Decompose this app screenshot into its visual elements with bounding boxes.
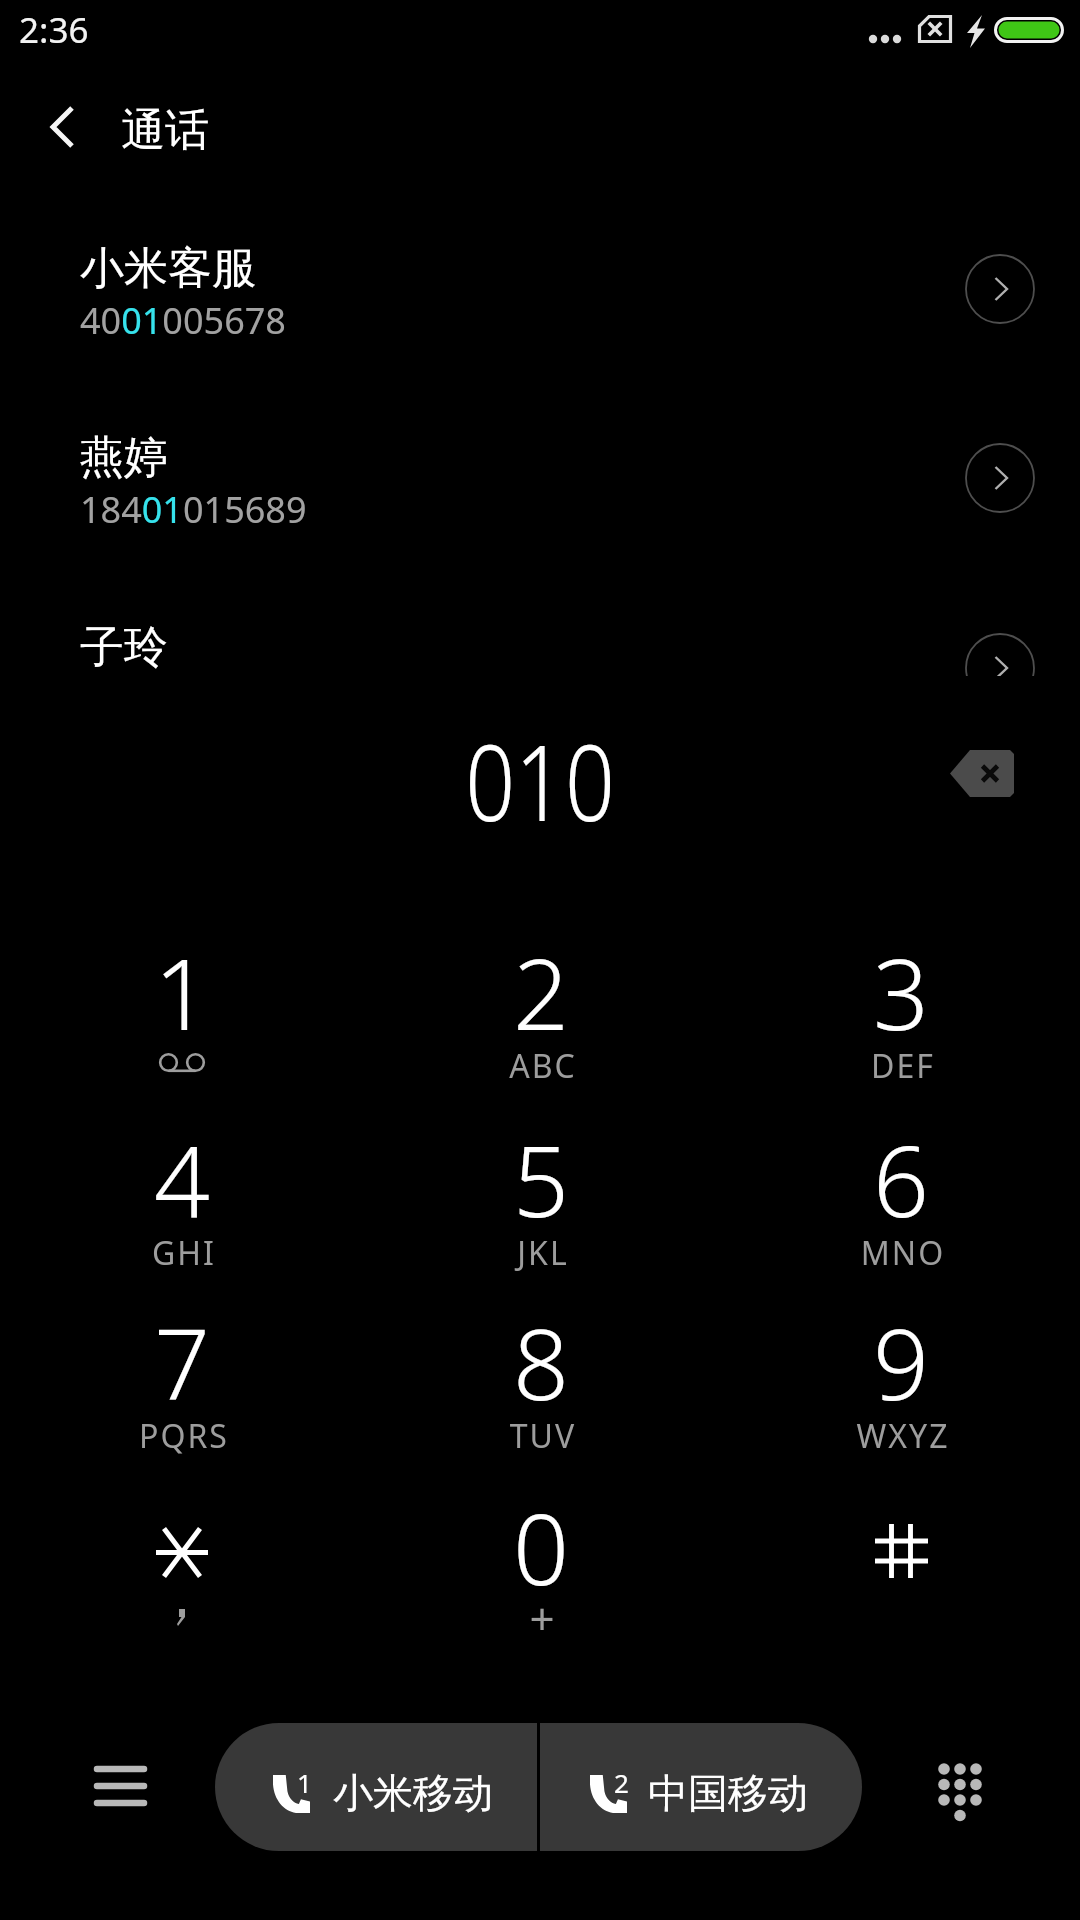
staticText: 2 <box>614 1765 629 1800</box>
button[interactable]: 小米客服 <box>0 190 1080 380</box>
button[interactable]: 5 <box>361 1113 721 1298</box>
staticText: 18401015689 <box>80 485 307 534</box>
button[interactable]: 1 <box>215 1723 536 1851</box>
staticText: 8 <box>361 1295 721 1428</box>
button[interactable]: Open contact 小米客服 <box>965 254 1035 324</box>
button[interactable]: Call log menu <box>75 1741 165 1831</box>
staticText: 9 <box>721 1295 1080 1428</box>
staticText: 6 <box>721 1112 1080 1245</box>
button[interactable]: 7 <box>2 1296 362 1481</box>
button[interactable]: 2 <box>361 926 721 1111</box>
staticText: 5 <box>361 1112 721 1245</box>
staticText: GHI <box>4 1231 364 1275</box>
staticText: 1 <box>297 1765 312 1800</box>
staticText: PQRS <box>4 1414 364 1458</box>
button[interactable]: 9 <box>721 1296 1080 1481</box>
staticText: 4001005678 <box>80 296 286 345</box>
staticText: JKL <box>363 1231 723 1275</box>
staticText: WXYZ <box>723 1414 1080 1458</box>
button[interactable]: 6 <box>721 1113 1080 1298</box>
button[interactable]: 1 <box>2 926 362 1111</box>
staticText: 中国移动 <box>648 1768 808 1818</box>
staticText: 子玲 <box>80 620 168 675</box>
staticText: 通话 <box>121 103 209 158</box>
button[interactable]: Open contact 子玲 <box>965 633 1035 676</box>
button[interactable]: pound <box>721 1481 1080 1666</box>
button[interactable]: 4 <box>2 1113 362 1298</box>
button[interactable]: 8 <box>361 1296 721 1481</box>
staticText: 2 <box>361 925 721 1058</box>
button[interactable]: 燕婷 <box>0 379 1080 569</box>
button[interactable]: Dialpad <box>915 1749 1005 1839</box>
staticText: 7 <box>2 1295 362 1428</box>
button[interactable]: Back <box>12 74 118 180</box>
button[interactable]: 2 <box>540 1723 862 1851</box>
staticText: 010 <box>86 710 994 852</box>
button[interactable]: 0 <box>361 1481 721 1666</box>
staticText: 燕婷 <box>80 430 168 485</box>
staticText: TUV <box>363 1414 723 1458</box>
staticText: 3 <box>721 925 1080 1058</box>
button[interactable]: Delete <box>934 734 1030 812</box>
staticText: 小米客服 <box>80 241 256 296</box>
staticText: DEF <box>723 1044 1080 1088</box>
staticText: + <box>363 1588 723 1648</box>
staticText: 2:36 <box>19 6 89 54</box>
button[interactable]: 子玲 <box>0 569 1080 676</box>
button[interactable]: Open contact 燕婷 <box>965 443 1035 513</box>
staticText: 4 <box>2 1112 362 1245</box>
staticText: ABC <box>363 1044 723 1088</box>
staticText: 小米移动 <box>333 1768 493 1818</box>
button[interactable]: star <box>2 1481 362 1666</box>
staticText: 1 <box>2 925 362 1058</box>
staticText: MNO <box>723 1231 1080 1275</box>
staticText: 0 <box>361 1480 721 1613</box>
button[interactable]: 3 <box>721 926 1080 1111</box>
